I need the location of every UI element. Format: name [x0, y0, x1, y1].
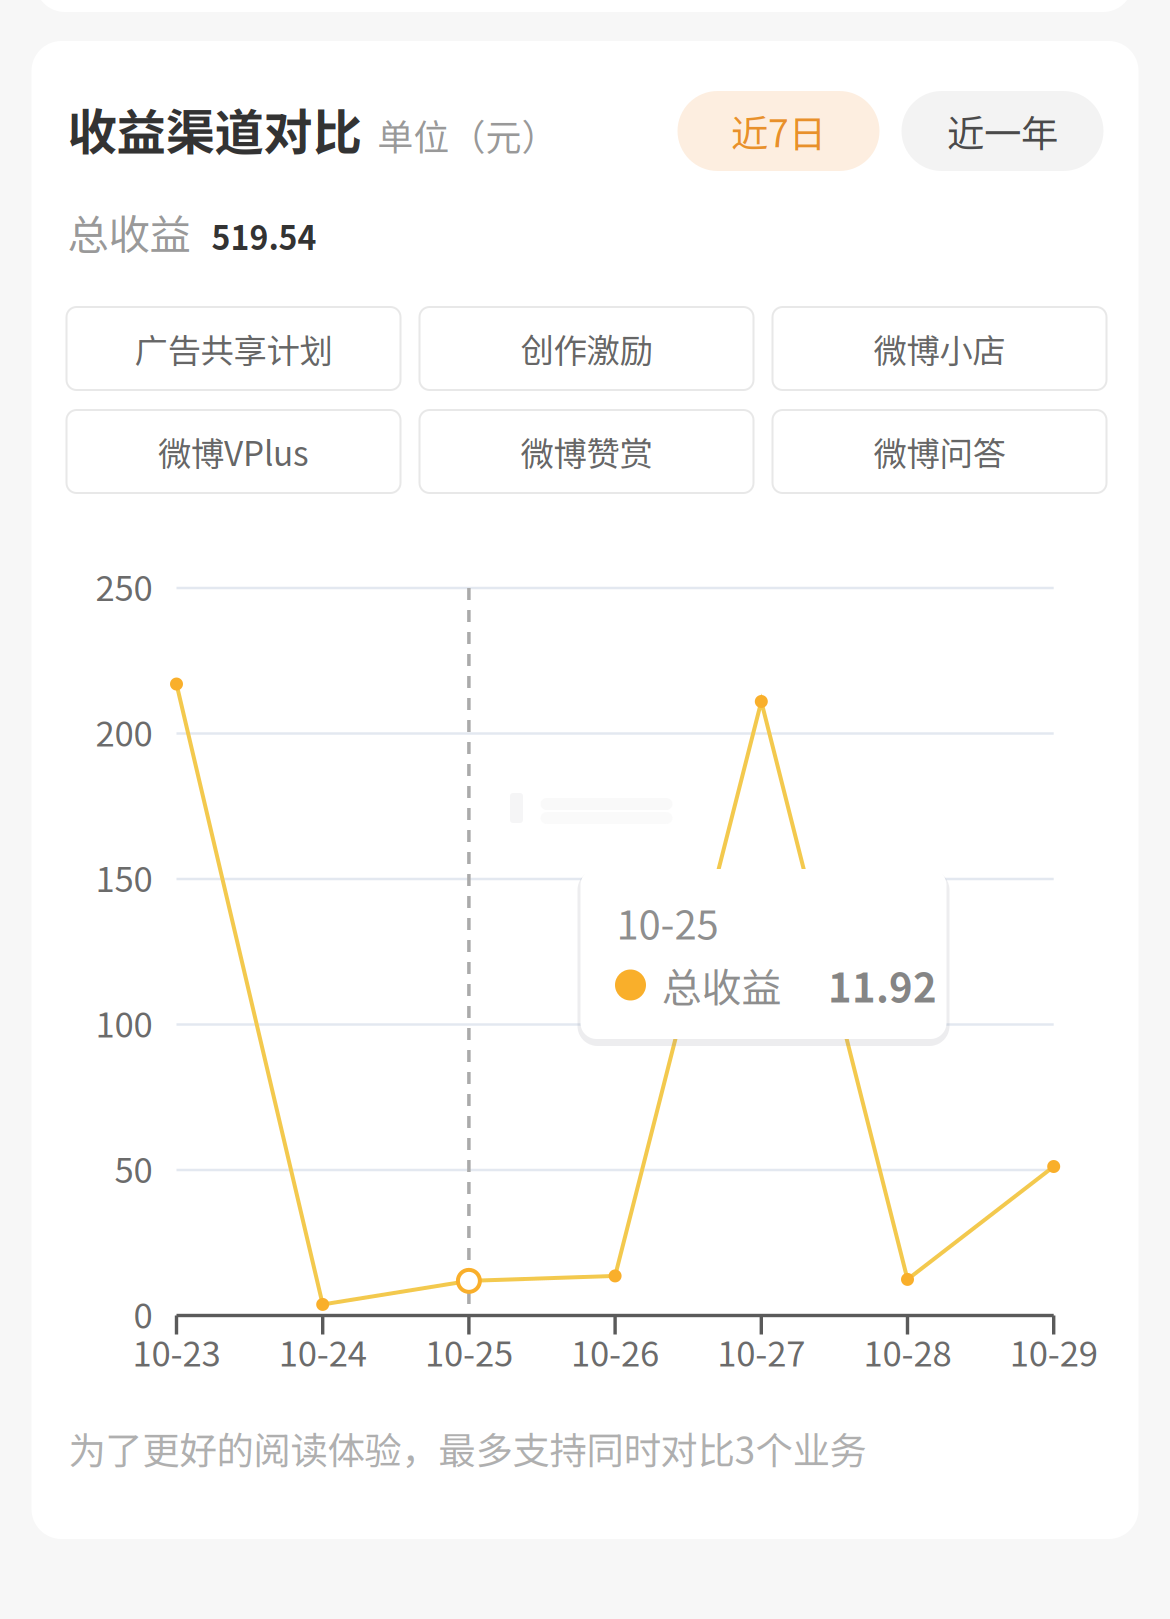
button[interactable]: 微博VPlus	[66, 410, 400, 493]
staticText: 11.92	[828, 956, 937, 1014]
button[interactable]: 广告共享计划	[66, 307, 400, 390]
staticText: 微博问答	[873, 427, 1005, 476]
staticText: 10-25	[425, 1326, 513, 1377]
staticText: 总收益	[67, 202, 190, 262]
staticText: 10-29	[1010, 1326, 1098, 1377]
staticText: 10-24	[279, 1326, 367, 1377]
staticText: 微博赞赏	[520, 427, 652, 476]
staticText: 250	[95, 561, 152, 611]
staticText: 100	[95, 997, 152, 1048]
button[interactable]: 近7日	[677, 91, 879, 171]
staticText: 收益渠道对比	[67, 93, 361, 165]
staticText: 微博VPlus	[158, 427, 309, 476]
staticText: 总收益	[661, 956, 781, 1014]
staticText: 近一年	[947, 104, 1058, 158]
staticText: 微博小店	[873, 324, 1005, 373]
button[interactable]: 创作激励	[419, 307, 753, 390]
staticText: 10-25	[616, 893, 718, 951]
staticText: 10-26	[571, 1326, 659, 1377]
staticText: 创作激励	[520, 324, 652, 373]
button[interactable]: 微博小店	[772, 307, 1106, 390]
staticText: 200	[95, 706, 152, 757]
staticText: 为了更好的阅读体验，最多支持同时对比3个业务	[68, 1421, 866, 1475]
button[interactable]: 近一年	[901, 91, 1103, 171]
staticText: 150	[95, 852, 152, 902]
staticText: 10-23	[132, 1326, 220, 1377]
staticText: 近7日	[731, 104, 826, 158]
button[interactable]: 微博问答	[772, 410, 1106, 493]
staticText: 广告共享计划	[134, 324, 332, 373]
staticText: 10-28	[863, 1326, 951, 1377]
staticText: 单位（元）	[361, 109, 557, 161]
staticText: 0	[133, 1288, 152, 1339]
staticText: 50	[114, 1143, 152, 1193]
staticText: 10-27	[717, 1326, 805, 1377]
staticText: 519.54	[190, 213, 316, 259]
button[interactable]: 微博赞赏	[419, 410, 753, 493]
